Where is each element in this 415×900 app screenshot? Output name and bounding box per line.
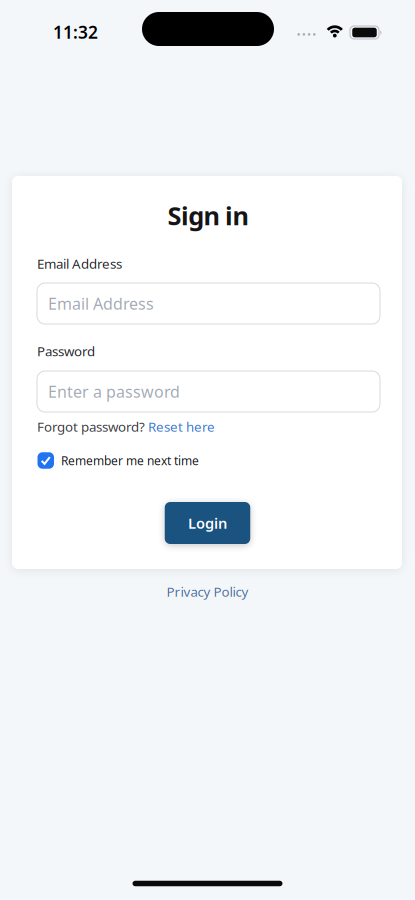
staticText: 11:32: [53, 20, 98, 43]
button[interactable]: Enter a password: [37, 371, 380, 412]
staticText: Email Address: [48, 293, 154, 314]
staticText: Email Address: [37, 255, 122, 272]
staticText: Privacy Policy: [166, 583, 248, 600]
staticText: Password: [37, 342, 95, 360]
staticText: Login: [188, 513, 227, 533]
button[interactable]: Reset here: [148, 418, 215, 435]
button[interactable]: Remember me next time: [37, 452, 199, 469]
staticText: Forgot password?: [37, 418, 145, 435]
staticText: Enter a password: [48, 381, 180, 402]
button[interactable]: Privacy Policy: [166, 583, 248, 600]
staticText: Reset here: [148, 418, 215, 435]
button[interactable]: Email Address: [37, 283, 380, 324]
staticText: Sign in: [168, 199, 248, 232]
staticText: Remember me next time: [61, 452, 199, 468]
button[interactable]: Login: [165, 502, 250, 544]
